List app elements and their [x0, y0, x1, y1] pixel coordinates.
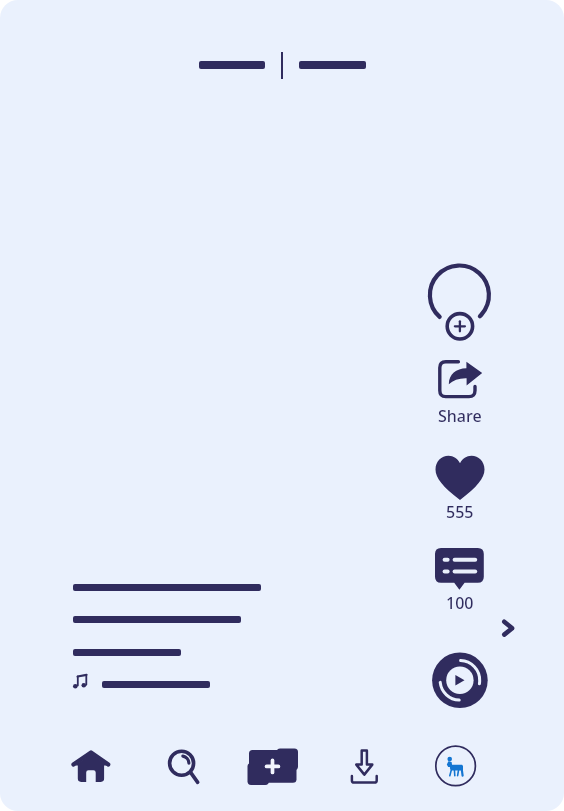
staticText: 555	[446, 501, 474, 523]
button[interactable]: For You	[289, 52, 375, 78]
button[interactable]: 555	[424, 455, 496, 523]
button[interactable]: Inbox	[339, 743, 391, 791]
button[interactable]: Music	[432, 652, 488, 708]
button[interactable]	[73, 584, 261, 591]
button[interactable]	[73, 649, 181, 656]
button[interactable]	[72, 673, 210, 691]
button[interactable]: Next	[494, 612, 526, 644]
button[interactable]: 100	[424, 548, 496, 614]
button[interactable]: Home	[66, 743, 116, 791]
button[interactable]: Search	[158, 743, 208, 791]
button[interactable]: Follow creator	[424, 258, 496, 344]
staticText: Share	[438, 405, 482, 427]
button[interactable]: Share	[425, 356, 495, 427]
button[interactable]: Profile	[433, 744, 478, 789]
button[interactable]: Following	[189, 52, 275, 78]
staticText: 100	[446, 592, 474, 614]
button[interactable]	[73, 616, 241, 623]
button[interactable]: Create	[243, 743, 303, 791]
